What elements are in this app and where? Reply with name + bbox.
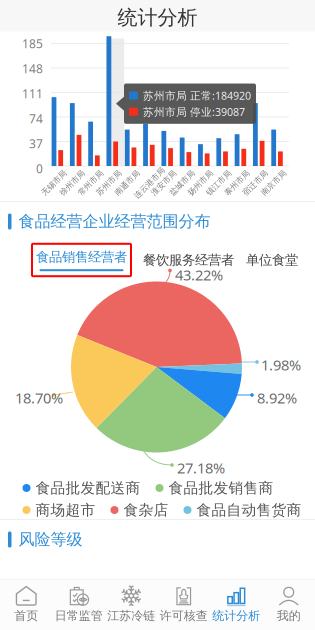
staticText: 111 [22, 85, 43, 101]
staticText: 无锡市局 [38, 178, 70, 188]
staticText: 食品自动售货商 [196, 501, 301, 519]
button[interactable]: 统计分析 [210, 585, 262, 623]
staticText: 日常监管 [55, 608, 103, 623]
staticText: 148 [22, 60, 43, 76]
staticText: 风险等级 [18, 530, 82, 549]
staticText: 1.98% [261, 355, 301, 374]
staticText: 统计分析 [117, 5, 197, 30]
staticText: 淮安市局 [148, 178, 180, 188]
staticText: 8.92% [257, 388, 297, 407]
staticText: 27.18% [177, 458, 225, 477]
button[interactable]: 食品销售经营者 [32, 244, 131, 276]
staticText: 食品销售经营者 [36, 249, 127, 265]
staticText: 徐州市局 [56, 178, 88, 188]
staticText: 185 [22, 35, 43, 51]
staticText: 74 [29, 110, 43, 126]
staticText: 餐饮服务经营者 [143, 252, 234, 268]
staticText: 盐城市局 [166, 178, 198, 188]
staticText: 食杂店 [123, 501, 168, 519]
staticText: 宿迁市局 [239, 178, 271, 188]
staticText: 单位食堂 [246, 252, 298, 268]
staticText: 南京市局 [258, 178, 290, 188]
button[interactable]: 许可核查 [157, 585, 210, 623]
staticText: 泰州市局 [221, 178, 253, 188]
staticText: 南通市局 [111, 178, 143, 188]
staticText: 食品批发销售商 [168, 479, 273, 497]
staticText: 统计分析 [212, 608, 260, 623]
staticText: 43.22% [175, 265, 223, 284]
staticText: 苏州市局 停业:39087 [143, 105, 245, 119]
staticText: 连云港市局 [129, 178, 169, 188]
staticText: 商场超市 [35, 501, 95, 519]
button[interactable]: 日常监管 [52, 585, 105, 623]
button[interactable]: 江苏冷链 [105, 585, 157, 623]
staticText: 许可核查 [160, 608, 208, 623]
staticText: 我的 [277, 608, 301, 623]
button[interactable]: 首页 [0, 585, 52, 623]
staticText: 苏州市局 [93, 178, 125, 188]
staticText: 食品批发配送商 [35, 479, 140, 497]
staticText: 首页 [14, 608, 38, 623]
staticText: 扬州市局 [184, 178, 216, 188]
staticText: 0 [36, 160, 43, 176]
staticText: 37 [29, 135, 43, 151]
staticText: 18.70% [15, 388, 63, 407]
staticText: 江苏冷链 [107, 608, 155, 623]
button[interactable]: 我的 [262, 585, 315, 623]
staticText: 苏州市局 正常:184920 [143, 88, 251, 103]
button[interactable]: 单位食堂 [246, 252, 298, 268]
button[interactable]: 餐饮服务经营者 [143, 252, 234, 268]
staticText: 镇江市局 [203, 178, 235, 188]
staticText: 食品经营企业经营范围分布 [18, 212, 210, 231]
staticText: 常州市局 [75, 178, 107, 188]
